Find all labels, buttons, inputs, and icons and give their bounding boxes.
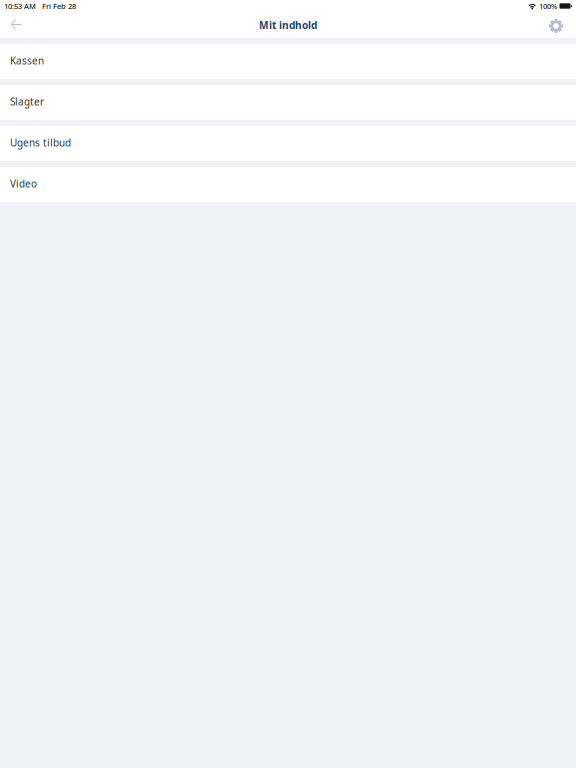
staticText: Fri Feb 28 [42, 1, 76, 11]
button[interactable]: Video [0, 167, 576, 202]
staticText: 100% [539, 1, 557, 11]
staticText: Ugens tilbud [10, 136, 71, 149]
button[interactable]: Settings [516, 12, 576, 38]
staticText: Mit indhold [259, 18, 317, 32]
button[interactable]: Slagter [0, 85, 576, 120]
staticText: Video [10, 177, 37, 190]
staticText: 10:53 AM [4, 1, 36, 11]
staticText: Kassen [10, 54, 44, 67]
staticText: Slagter [10, 95, 44, 108]
button[interactable]: Back [0, 12, 60, 38]
button[interactable]: Ugens tilbud [0, 126, 576, 161]
button[interactable]: Kassen [0, 44, 576, 79]
